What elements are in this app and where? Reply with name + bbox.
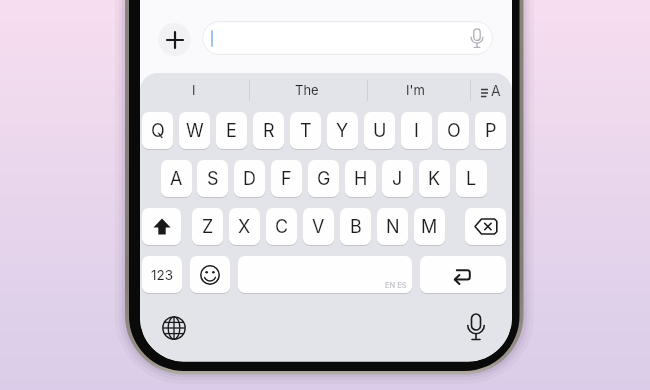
button[interactable]: O <box>438 112 469 149</box>
staticText: T <box>300 120 312 142</box>
staticText: K <box>428 168 441 190</box>
button[interactable] <box>160 314 188 342</box>
staticText: N <box>386 216 400 238</box>
button[interactable]: Y <box>327 112 358 149</box>
staticText: EN ES <box>385 281 407 290</box>
staticText: I'm <box>406 82 425 98</box>
staticText: G <box>317 168 331 190</box>
button[interactable]: A <box>161 160 192 197</box>
staticText: Y <box>336 120 349 142</box>
button[interactable]: R <box>253 112 284 149</box>
button[interactable]: D <box>234 160 265 197</box>
button[interactable]: S <box>197 160 228 197</box>
button[interactable]: C <box>266 208 297 245</box>
button[interactable]: G <box>308 160 339 197</box>
staticText: O <box>447 120 461 142</box>
button[interactable] <box>462 313 490 343</box>
staticText: C <box>275 216 289 238</box>
staticText: 123 <box>151 267 174 283</box>
staticText: E <box>226 120 237 142</box>
button[interactable]: P <box>475 112 506 149</box>
button[interactable] <box>158 23 191 56</box>
button[interactable]: A <box>478 82 504 102</box>
staticText: P <box>485 120 497 142</box>
button[interactable]: I'm <box>385 78 445 102</box>
staticText: S <box>207 168 219 190</box>
staticText: Z <box>202 216 214 238</box>
staticText: A <box>491 82 501 99</box>
button[interactable]: K <box>419 160 450 197</box>
button[interactable]: W <box>179 112 210 149</box>
button[interactable] <box>190 256 230 293</box>
button[interactable]: Z <box>192 208 223 245</box>
button[interactable]: N <box>377 208 408 245</box>
staticText: Q <box>151 120 165 142</box>
button[interactable]: L <box>456 160 487 197</box>
button[interactable]: M <box>414 208 445 245</box>
button[interactable] <box>142 208 181 245</box>
staticText: V <box>312 216 325 238</box>
button[interactable]: U <box>364 112 395 149</box>
staticText: A <box>170 168 183 190</box>
staticText: L <box>466 168 477 190</box>
button[interactable]: F <box>271 160 302 197</box>
button[interactable]: B <box>340 208 371 245</box>
staticText: I <box>414 120 419 142</box>
button[interactable]: Q <box>142 112 173 149</box>
button[interactable] <box>465 208 506 245</box>
staticText: M <box>421 216 438 238</box>
button[interactable]: J <box>382 160 413 197</box>
button[interactable]: H <box>345 160 376 197</box>
staticText: U <box>373 120 387 142</box>
button[interactable] <box>420 256 506 293</box>
button[interactable] <box>202 21 493 55</box>
button[interactable]: I <box>164 78 224 102</box>
button[interactable]: I <box>401 112 432 149</box>
staticText: D <box>243 168 256 190</box>
button[interactable]: 123 <box>142 256 182 293</box>
button[interactable]: T <box>290 112 321 149</box>
button[interactable]: E <box>216 112 247 149</box>
staticText: X <box>238 216 251 238</box>
staticText: J <box>392 168 403 190</box>
staticText: The <box>295 82 319 98</box>
staticText: H <box>354 168 368 190</box>
button[interactable]: EN ES <box>238 256 412 293</box>
staticText: R <box>263 120 275 142</box>
button[interactable]: V <box>303 208 334 245</box>
staticText: B <box>350 216 362 238</box>
button[interactable]: X <box>229 208 260 245</box>
staticText: F <box>281 168 292 190</box>
staticText: I <box>192 82 196 98</box>
button[interactable]: The <box>277 78 337 102</box>
staticText: W <box>186 120 204 142</box>
